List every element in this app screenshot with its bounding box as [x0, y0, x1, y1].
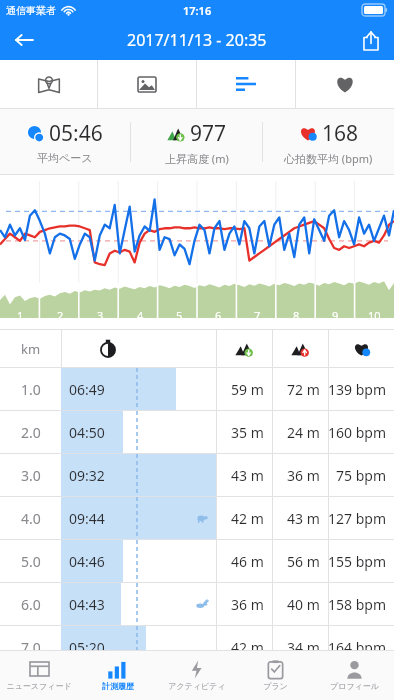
staticText: 155 bpm	[328, 552, 386, 571]
button[interactable]: Splits	[197, 60, 295, 108]
staticText: 3	[97, 308, 104, 318]
staticText: 160 bpm	[328, 423, 386, 442]
staticText: 24 m	[287, 423, 320, 442]
staticText: 2	[57, 308, 64, 318]
staticText: 72 m	[287, 380, 320, 399]
button[interactable]: プロフィール	[315, 651, 394, 700]
staticText: 34 m	[287, 638, 320, 657]
staticText: km	[21, 340, 41, 358]
staticText: 06:49	[69, 380, 105, 399]
staticText: 1	[17, 308, 24, 318]
staticText: 3.0	[21, 466, 41, 485]
staticText: 8	[293, 308, 300, 318]
button[interactable]: Photos	[98, 60, 196, 108]
staticText: 心拍数平均 (bpm)	[284, 151, 373, 166]
staticText: 127 bpm	[328, 509, 386, 528]
staticText: 59 m	[231, 380, 264, 399]
button[interactable]: Back	[0, 20, 48, 60]
button[interactable]: 977	[131, 109, 262, 175]
staticText: 上昇高度 (m)	[165, 151, 229, 166]
staticText: 42 m	[231, 509, 264, 528]
staticText: 36 m	[231, 595, 264, 614]
staticText: 139 bpm	[328, 380, 386, 399]
staticText: 04:46	[69, 552, 105, 571]
staticText: 43 m	[231, 466, 264, 485]
staticText: 通信事業者	[6, 4, 56, 17]
staticText: 7	[254, 308, 261, 318]
staticText: 09:44	[69, 509, 105, 528]
button[interactable]: Heart rate	[296, 60, 394, 108]
staticText: 17:16	[183, 3, 212, 18]
staticText: 4.0	[21, 509, 41, 528]
staticText: 平均ペース	[37, 151, 93, 165]
staticText: 5	[176, 308, 183, 318]
staticText: 164 bpm	[328, 638, 386, 657]
staticText: プロフィール	[330, 681, 379, 691]
button[interactable]: Share	[348, 20, 394, 60]
button[interactable]: ニュースフィード	[0, 651, 78, 700]
button[interactable]: プラン	[236, 651, 315, 700]
staticText: 04:43	[69, 595, 105, 614]
staticText: 42 m	[231, 638, 264, 657]
staticText: 04:50	[69, 423, 105, 442]
button[interactable]: Map	[0, 60, 97, 108]
staticText: 7.0	[21, 638, 41, 657]
staticText: 計測履歴	[102, 681, 134, 691]
staticText: 1.0	[21, 380, 41, 399]
staticText: 43 m	[287, 509, 320, 528]
button[interactable]: アクティビティ	[157, 651, 236, 700]
staticText: 05:46	[49, 119, 103, 148]
staticText: 10	[368, 308, 381, 318]
staticText: 4	[137, 308, 144, 318]
staticText: 2017/11/13 - 20:35	[127, 29, 267, 51]
staticText: 5.0	[21, 552, 41, 571]
staticText: 158 bpm	[328, 595, 386, 614]
staticText: 2.0	[21, 423, 41, 442]
staticText: 40 m	[287, 595, 320, 614]
staticText: プラン	[263, 681, 288, 691]
staticText: 6.0	[21, 595, 41, 614]
staticText: 977	[190, 119, 227, 148]
button[interactable]: 05:46	[0, 109, 130, 175]
staticText: 46 m	[231, 552, 264, 571]
staticText: 09:32	[69, 466, 105, 485]
staticText: 168	[322, 119, 359, 148]
staticText: アクティビティ	[168, 681, 226, 691]
staticText: ニュースフィード	[6, 681, 72, 691]
staticText: 75 bpm	[336, 466, 386, 485]
button[interactable]: 168	[263, 109, 394, 175]
staticText: 56 m	[287, 552, 320, 571]
staticText: 9	[332, 308, 339, 318]
staticText: 36 m	[287, 466, 320, 485]
staticText: 6	[215, 308, 222, 318]
staticText: 35 m	[231, 423, 264, 442]
staticText: 05:20	[69, 638, 105, 657]
button[interactable]: 計測履歴	[78, 651, 157, 700]
